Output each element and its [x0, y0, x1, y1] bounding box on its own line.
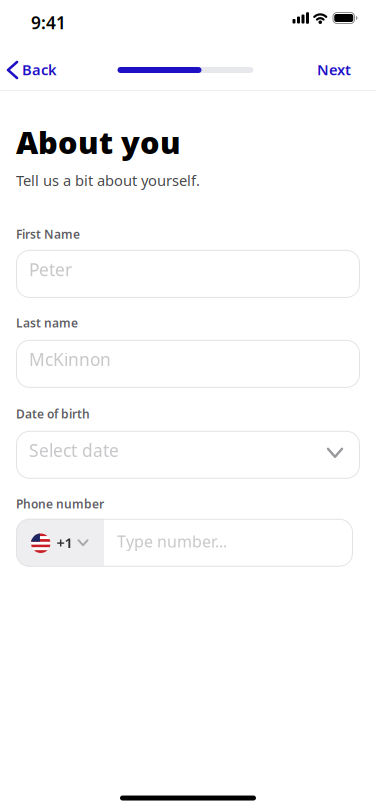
staticText: Back [22, 60, 57, 79]
button[interactable]: Next [317, 60, 376, 80]
button[interactable]: Date of birth [16, 422, 360, 479]
staticText: First Name [16, 226, 80, 242]
staticText: Tell us a bit about yourself. [16, 170, 200, 190]
button[interactable]: Country code [16, 519, 104, 567]
button[interactable]: Phone number [16, 512, 360, 567]
staticText: Select date [29, 439, 119, 462]
staticText: Date of birth [16, 406, 90, 422]
staticText: Next [317, 60, 351, 79]
staticText: Peter [29, 258, 72, 281]
staticText: +1 [56, 533, 72, 552]
staticText: 9:41 [31, 11, 66, 34]
button[interactable]: Last name [16, 331, 360, 388]
staticText: Last name [16, 315, 78, 331]
button[interactable]: First Name [16, 242, 360, 298]
staticText: McKinnon [29, 348, 111, 371]
button[interactable]: Back [0, 60, 57, 80]
staticText: Type number... [117, 531, 227, 552]
staticText: About you [16, 122, 181, 162]
staticText: Phone number [16, 496, 104, 512]
